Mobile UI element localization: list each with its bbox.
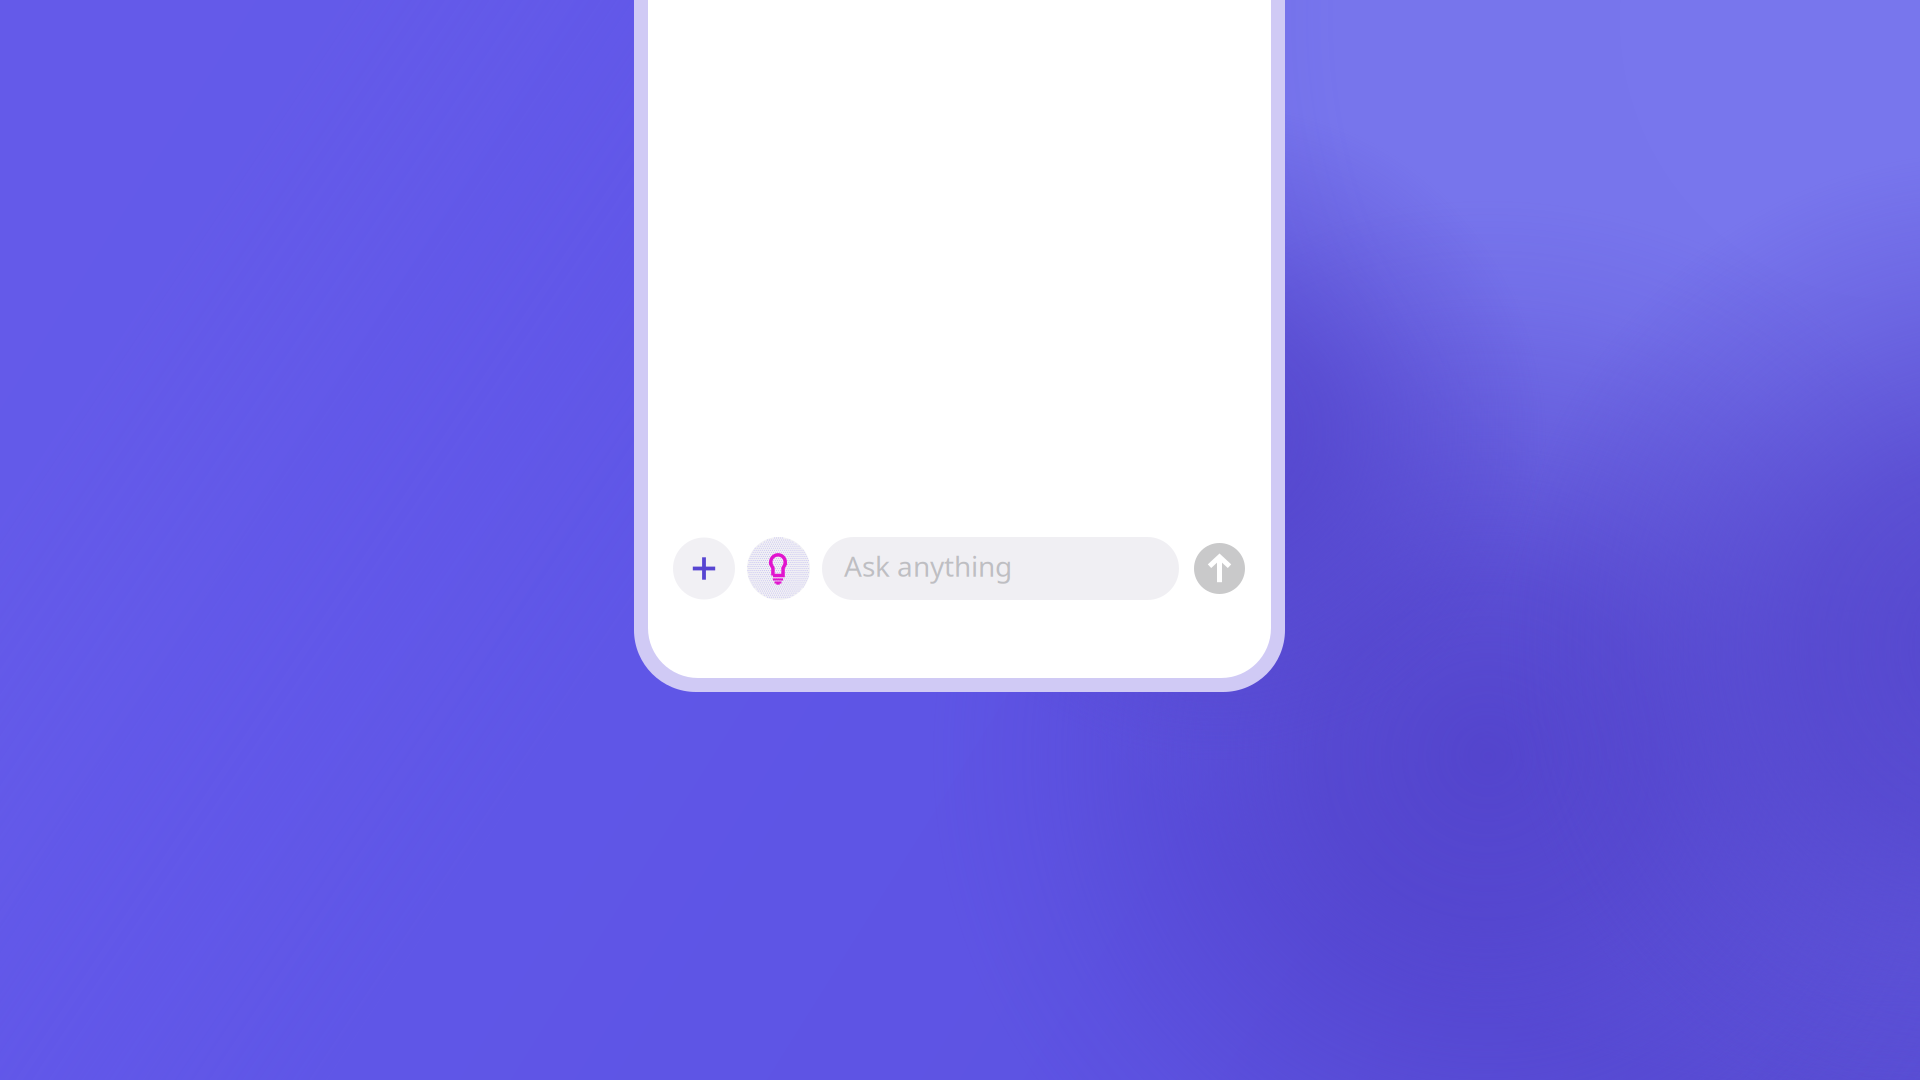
button[interactable]: Ask anything [822, 537, 1179, 600]
button[interactable]: Send [1194, 543, 1245, 594]
staticText: Ask anything [844, 547, 1012, 585]
button[interactable]: Add attachment [673, 537, 735, 599]
button[interactable]: Suggestions [747, 537, 810, 600]
